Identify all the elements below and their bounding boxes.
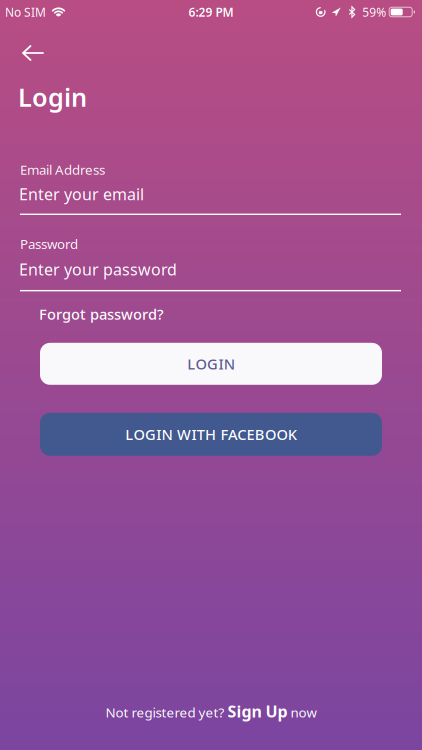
staticText: No SIM — [5, 4, 46, 20]
staticText: Login — [18, 80, 87, 114]
staticText: Password — [20, 235, 78, 253]
staticText: Email Address — [20, 161, 105, 178]
staticText: Enter your password — [19, 259, 177, 280]
button[interactable]: LOGIN WITH FACEBOOK — [40, 413, 382, 456]
staticText: Forgot password? — [39, 304, 164, 324]
button[interactable]: Not registered yet? Sign Up now — [105, 701, 316, 722]
staticText: 59% — [362, 4, 386, 20]
staticText: Enter your email — [19, 183, 144, 204]
staticText: 6:29 PM — [188, 4, 233, 20]
button[interactable]: Back — [23, 46, 43, 60]
button[interactable]: Forgot password? — [39, 304, 164, 324]
button[interactable]: LOGIN — [40, 343, 382, 385]
staticText: LOGIN WITH FACEBOOK — [125, 425, 297, 444]
staticText: LOGIN — [187, 354, 235, 374]
staticText: Not registered yet? Sign Up now — [105, 701, 316, 722]
